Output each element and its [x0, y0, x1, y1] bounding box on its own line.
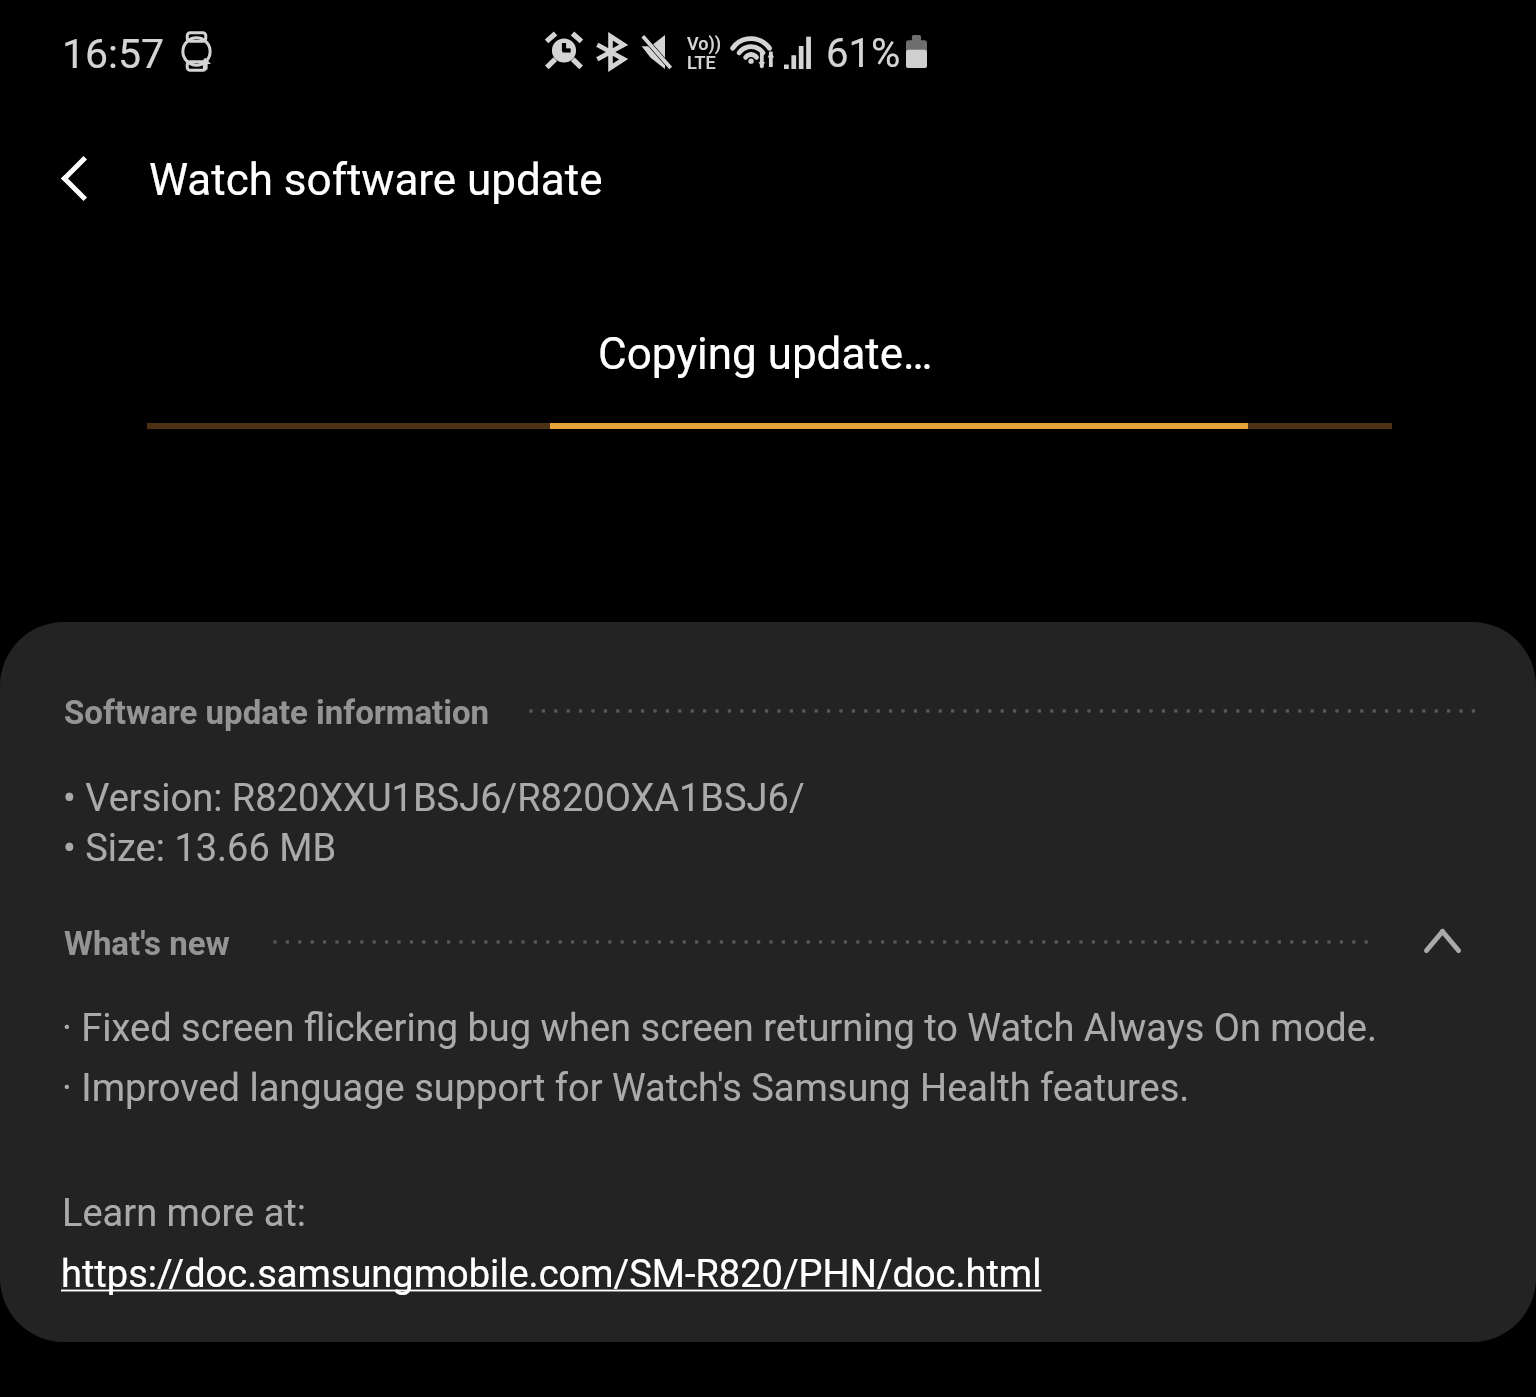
staticText: • Size: 13.66 MB — [63, 826, 337, 871]
staticText: Watch software update — [149, 154, 603, 206]
staticText: LTE — [687, 52, 716, 73]
staticText: 61% — [826, 30, 901, 77]
other: Collapse What's new — [1406, 905, 1478, 977]
button[interactable]: Software update information — [52, 674, 1492, 746]
button[interactable]: What's new — [52, 905, 1492, 977]
button[interactable]: Navigate up — [28, 132, 120, 224]
staticText: What's new — [64, 924, 230, 963]
staticText: · Improved language support for Watch's … — [62, 1066, 1190, 1111]
staticText: Software update information — [64, 693, 490, 732]
staticText: 16:57 — [62, 30, 165, 78]
button[interactable]: https://doc.samsungmobile.com/SM-R820/PH… — [61, 1252, 1042, 1297]
staticText: Vo)) — [687, 33, 722, 54]
staticText: · Fixed screen flickering bug when scree… — [62, 1006, 1377, 1051]
staticText: Learn more at: — [62, 1191, 306, 1236]
staticText: • Version: R820XXU1BSJ6/R820OXA1BSJ6/ — [63, 776, 805, 821]
staticText: Copying update… — [598, 328, 933, 380]
